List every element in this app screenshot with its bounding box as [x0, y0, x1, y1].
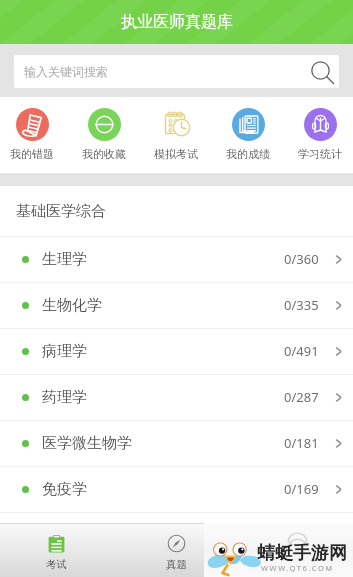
staticText: 免疫学: [42, 480, 87, 499]
staticText: 病理学: [42, 342, 87, 361]
staticText: 考试: [46, 558, 67, 571]
button[interactable]: 学习统计: [284, 97, 353, 173]
staticText: 蜻蜓手游网: [257, 542, 347, 565]
button[interactable]: 病理学: [0, 328, 353, 374]
staticText: 学习统计: [298, 147, 342, 161]
staticText: 0/181: [284, 434, 319, 452]
staticText: 0/360: [284, 250, 319, 268]
button[interactable]: 生理学: [0, 236, 353, 282]
staticText: 药理学: [42, 388, 87, 407]
button[interactable]: 我的错题: [0, 97, 68, 173]
button[interactable]: 输入关键词搜索: [14, 55, 339, 88]
button[interactable]: 生物化学: [0, 282, 353, 328]
button[interactable]: 我的成绩: [212, 97, 284, 173]
button[interactable]: 真题: [121, 524, 231, 577]
button[interactable]: 模拟考试: [140, 97, 212, 173]
staticText: 基础医学综合: [16, 202, 106, 221]
staticText: 输入关键词搜索: [24, 64, 108, 79]
staticText: 我的错题: [10, 147, 54, 161]
staticText: 模拟考试: [154, 147, 198, 161]
staticText: 我的收藏: [82, 147, 126, 161]
staticText: 0/169: [284, 480, 319, 498]
staticText: 真题: [166, 558, 187, 571]
staticText: 生物化学: [42, 296, 102, 315]
staticText: 0/287: [284, 388, 319, 406]
staticText: 0/491: [284, 342, 319, 360]
staticText: WWW.QT6.COM: [261, 563, 334, 573]
staticText: 我的: [286, 558, 307, 571]
other: Search: [310, 60, 334, 84]
button[interactable]: 免疫学: [0, 466, 353, 512]
button[interactable]: 药理学: [0, 374, 353, 420]
staticText: 生理学: [42, 250, 87, 269]
button[interactable]: 我的收藏: [68, 97, 140, 173]
button[interactable]: 我的: [241, 524, 351, 577]
staticText: 执业医师真题库: [121, 12, 233, 32]
button[interactable]: 医学微生物学: [0, 420, 353, 466]
staticText: 0/335: [284, 296, 319, 314]
staticText: 医学微生物学: [42, 434, 132, 453]
button[interactable]: 考试: [1, 524, 111, 577]
staticText: 我的成绩: [226, 147, 270, 161]
